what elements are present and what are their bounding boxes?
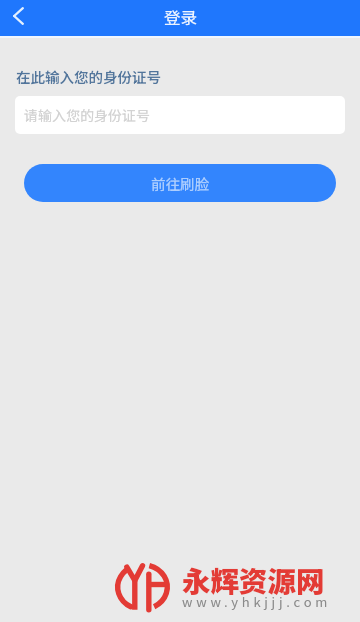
button[interactable]: 前往刷脸 — [24, 164, 336, 202]
staticText: 前往刷脸 — [151, 173, 209, 194]
button[interactable]: Back — [3, 1, 33, 31]
staticText: www.yhkjjj.com — [182, 592, 332, 611]
staticText: 登录 — [164, 5, 197, 29]
staticText: 在此输入您的身份证号 — [16, 66, 161, 87]
button[interactable]: 请输入您的身份证号 — [15, 96, 345, 134]
staticText: 永辉资源网 — [182, 559, 325, 600]
staticText: 请输入您的身份证号 — [24, 105, 150, 125]
